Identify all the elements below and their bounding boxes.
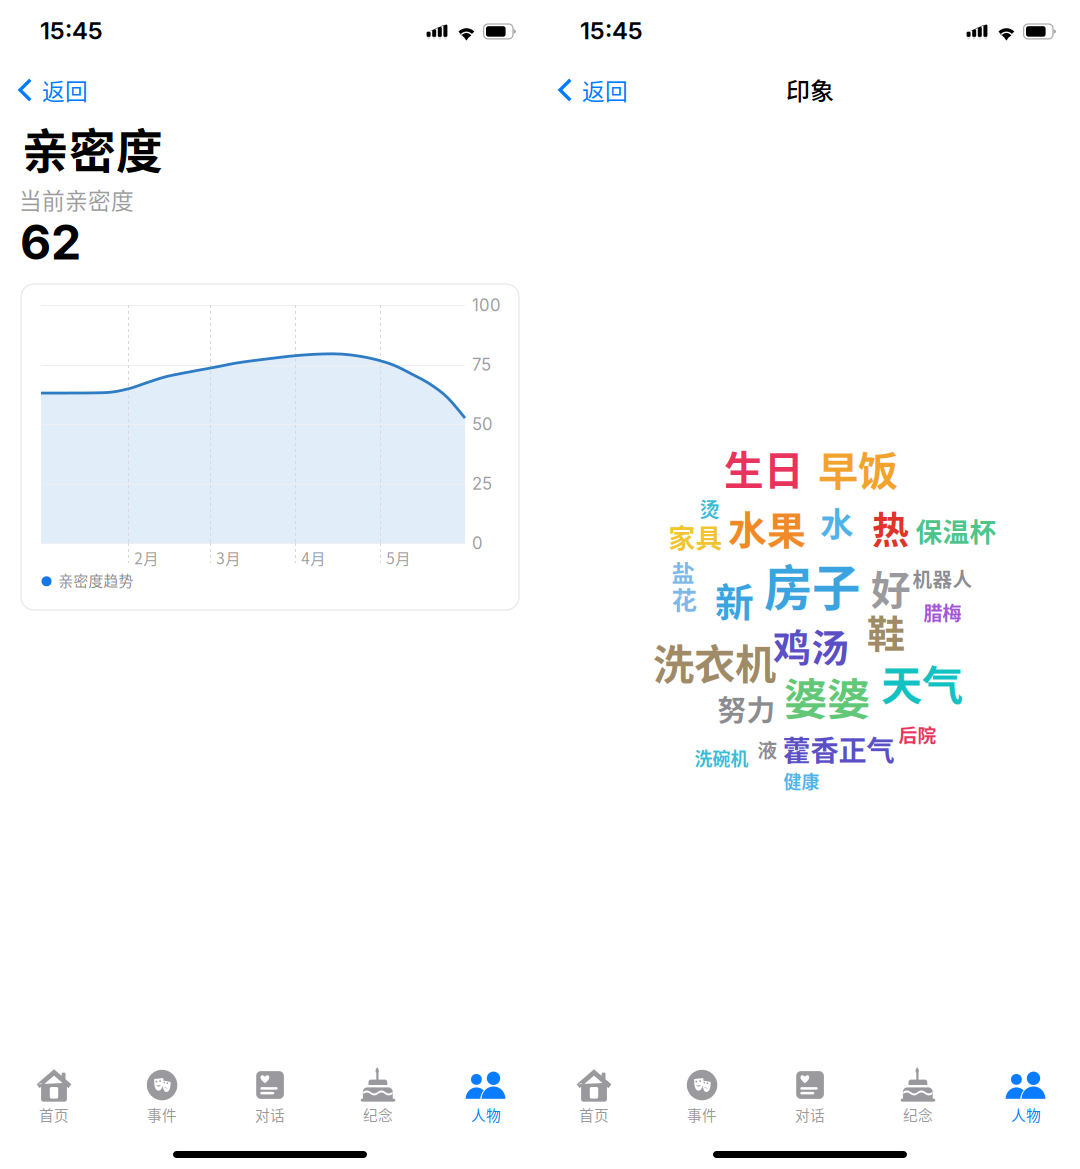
staticText: 保温杯 bbox=[915, 511, 996, 550]
staticText: 婆婆 bbox=[784, 665, 870, 728]
button[interactable]: 首页 bbox=[540, 1067, 648, 1131]
button[interactable]: 事件 bbox=[648, 1067, 756, 1131]
button[interactable]: 返回 bbox=[0, 66, 100, 114]
staticText: 15:45 bbox=[580, 16, 643, 45]
staticText: 努力 bbox=[717, 687, 775, 729]
button[interactable]: 纪念 bbox=[324, 1067, 432, 1131]
button[interactable]: 对话 bbox=[216, 1067, 324, 1131]
staticText: 人物 bbox=[1011, 1104, 1041, 1125]
staticText: 烫 bbox=[700, 494, 720, 523]
staticText: 腊梅 bbox=[924, 598, 962, 626]
staticText: 盐 bbox=[671, 555, 694, 588]
staticText: 15:45 bbox=[40, 16, 103, 45]
staticText: 25 bbox=[472, 473, 492, 494]
staticText: 水果 bbox=[728, 499, 806, 556]
staticText: 后院 bbox=[899, 720, 937, 747]
staticText: 首页 bbox=[579, 1104, 609, 1125]
staticText: 事件 bbox=[147, 1104, 177, 1125]
staticText: 健康 bbox=[784, 768, 820, 794]
staticText: 热 bbox=[872, 501, 909, 555]
staticText: 对话 bbox=[255, 1104, 285, 1125]
staticText: 洗衣机 bbox=[653, 632, 776, 691]
staticText: 对话 bbox=[795, 1104, 825, 1125]
staticText: 62 bbox=[20, 213, 81, 271]
staticText: 75 bbox=[472, 354, 491, 375]
staticText: 首页 bbox=[39, 1104, 69, 1125]
button[interactable]: 人物 bbox=[972, 1067, 1080, 1131]
staticText: 5月 bbox=[386, 546, 410, 569]
staticText: 机器人 bbox=[913, 564, 973, 592]
staticText: 50 bbox=[472, 414, 493, 434]
staticText: 洗碗机 bbox=[695, 745, 749, 771]
staticText: 印象 bbox=[786, 72, 834, 107]
staticText: 房子 bbox=[764, 549, 860, 620]
staticText: 3月 bbox=[216, 546, 240, 569]
button[interactable]: 首页 bbox=[0, 1067, 108, 1131]
staticText: 花 bbox=[671, 580, 696, 617]
staticText: 家具 bbox=[668, 517, 722, 556]
staticText: 事件 bbox=[687, 1104, 717, 1125]
staticText: 2月 bbox=[134, 546, 158, 569]
staticText: 100 bbox=[472, 295, 501, 315]
staticText: 亲密度 bbox=[22, 114, 163, 182]
button[interactable]: 纪念 bbox=[864, 1067, 972, 1131]
staticText: 返回 bbox=[582, 74, 628, 106]
staticText: 人物 bbox=[471, 1104, 501, 1125]
staticText: 返回 bbox=[42, 74, 88, 106]
staticText: 好 bbox=[871, 559, 911, 616]
staticText: 鸡汤 bbox=[773, 618, 849, 672]
staticText: 4月 bbox=[301, 546, 325, 569]
staticText: 早饭 bbox=[818, 439, 898, 497]
button[interactable]: 人物 bbox=[432, 1067, 540, 1131]
staticText: 藿香正气 bbox=[782, 729, 894, 769]
staticText: 纪念 bbox=[363, 1104, 393, 1125]
button[interactable]: 返回 bbox=[540, 66, 640, 114]
staticText: 液 bbox=[758, 735, 778, 763]
staticText: 纪念 bbox=[903, 1104, 933, 1125]
staticText: 亲密度趋势 bbox=[59, 570, 134, 591]
staticText: 当前亲密度 bbox=[19, 183, 134, 216]
staticText: 0 bbox=[472, 533, 483, 553]
button[interactable]: 对话 bbox=[756, 1067, 864, 1131]
staticText: 鞋 bbox=[867, 604, 905, 659]
button[interactable]: 事件 bbox=[108, 1067, 216, 1131]
staticText: 新 bbox=[715, 571, 754, 628]
staticText: 生日 bbox=[724, 439, 804, 496]
staticText: 天气 bbox=[881, 653, 963, 712]
staticText: 水 bbox=[820, 498, 853, 546]
